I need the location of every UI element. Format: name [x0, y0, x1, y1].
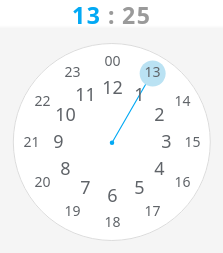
- staticText: :: [108, 0, 115, 27]
- button[interactable]: 10: [53, 102, 77, 126]
- staticText: 6: [107, 183, 118, 207]
- button[interactable]: 21: [19, 129, 43, 153]
- staticText: 25: [122, 0, 152, 27]
- button[interactable]: 20: [30, 169, 54, 193]
- staticText: 2: [154, 102, 165, 126]
- button[interactable]: 8: [53, 156, 77, 180]
- button[interactable]: 7: [73, 175, 97, 199]
- staticText: 8: [60, 156, 71, 180]
- button[interactable]: 17: [140, 198, 164, 222]
- staticText: 3: [161, 129, 172, 153]
- button[interactable]: 12: [100, 75, 124, 99]
- staticText: 9: [53, 129, 64, 153]
- button[interactable]: 6: [100, 183, 124, 207]
- button[interactable]: 15: [180, 129, 204, 153]
- staticText: 7: [80, 175, 91, 199]
- button[interactable]: 25: [122, 0, 152, 27]
- staticText: 00: [104, 51, 121, 70]
- staticText: 21: [23, 132, 40, 151]
- button[interactable]: 9: [46, 129, 70, 153]
- button[interactable]: 5: [127, 175, 151, 199]
- staticText: 18: [104, 212, 121, 231]
- staticText: 13: [72, 0, 102, 27]
- button[interactable]: 19: [60, 198, 84, 222]
- button[interactable]: 4: [147, 156, 171, 180]
- staticText: 15: [184, 132, 201, 151]
- staticText: 11: [75, 82, 96, 106]
- staticText: 19: [64, 201, 81, 220]
- button[interactable]: 23: [60, 59, 84, 83]
- button[interactable]: 11: [73, 82, 97, 106]
- staticText: 4: [154, 156, 165, 180]
- button[interactable]: 13: [72, 0, 102, 27]
- staticText: 17: [144, 201, 161, 220]
- button[interactable]: 13: [140, 59, 164, 83]
- button[interactable]: 14: [170, 88, 194, 112]
- staticText: 12: [102, 75, 123, 99]
- staticText: 14: [174, 91, 191, 110]
- staticText: 10: [55, 102, 76, 126]
- staticText: 16: [174, 172, 191, 191]
- button[interactable]: 22: [30, 88, 54, 112]
- button[interactable]: 16: [170, 169, 194, 193]
- staticText: 23: [64, 62, 81, 81]
- button[interactable]: 00: [100, 48, 124, 72]
- button[interactable]: 3: [154, 129, 178, 153]
- staticText: 13: [144, 62, 161, 81]
- button[interactable]: 1: [127, 82, 151, 106]
- button[interactable]: 18: [100, 209, 124, 233]
- staticText: 20: [34, 172, 51, 191]
- staticText: 22: [34, 91, 51, 110]
- staticText: 5: [134, 175, 145, 199]
- button[interactable]: 2: [147, 102, 171, 126]
- staticText: 1: [134, 82, 145, 106]
